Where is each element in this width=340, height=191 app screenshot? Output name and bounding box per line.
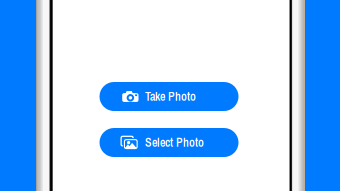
staticText: Select Photo xyxy=(145,134,204,151)
button[interactable]: Take Photo xyxy=(99,82,238,111)
button[interactable]: Select Photo xyxy=(99,128,238,157)
staticText: Take Photo xyxy=(145,88,196,105)
